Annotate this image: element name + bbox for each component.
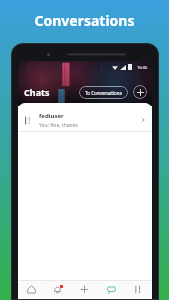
button[interactable]: New conversation [133,85,147,99]
button[interactable]: Conversations [98,281,125,298]
button[interactable]: Lists [125,281,152,298]
button[interactable]: Home [18,281,44,298]
button[interactable]: Notifications [44,281,71,298]
button[interactable]: New post [71,281,98,298]
staticText: Conversations [34,11,135,30]
staticText: 16:06 [137,65,148,70]
button[interactable]: To Conversations [79,86,128,99]
staticText: Chats [24,86,50,98]
staticText: fediuser [39,112,64,120]
button[interactable]: fediuser [18,109,152,131]
staticText: To Conversations [85,90,122,96]
staticText: You: fine, thanks [39,122,78,129]
